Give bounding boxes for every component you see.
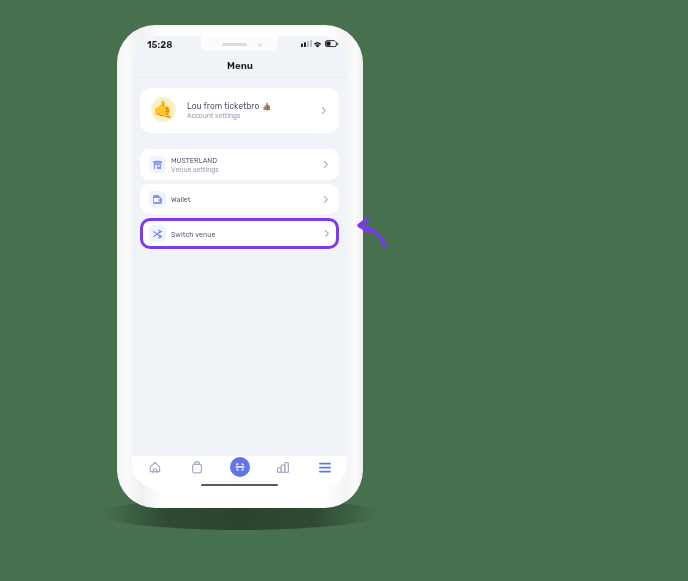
staticText: Menu [227,60,253,71]
button[interactable]: Scan [228,455,252,479]
button[interactable]: Wallet [140,184,339,214]
staticText: Account settings [187,112,241,120]
button[interactable]: Switch venue [143,221,336,246]
staticText: Lou from ticketbro [187,101,260,111]
staticText: Switch venue [171,230,325,238]
button[interactable]: Statistics [271,455,295,479]
staticText: 👍🏽 [262,102,272,111]
button[interactable]: More [313,455,337,479]
button[interactable]: Home [143,455,167,479]
button[interactable]: MUSTERLAND [140,149,339,180]
staticText: MUSTERLAND [171,156,218,164]
staticText: 15:28 [147,39,173,50]
staticText: Venue settings [171,166,219,174]
button[interactable]: Orders [185,455,209,479]
button[interactable]: 🤙 [140,88,339,133]
staticText: Wallet [171,195,191,203]
staticText: 🤙 [153,100,174,119]
